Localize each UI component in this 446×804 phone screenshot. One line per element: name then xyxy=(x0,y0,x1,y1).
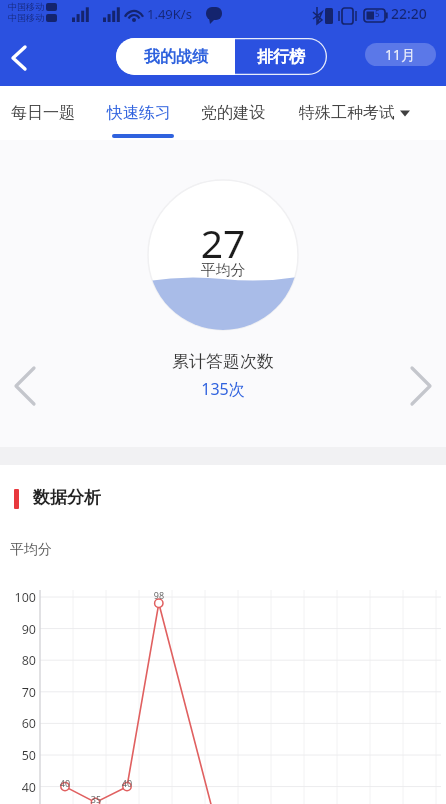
button[interactable]: 快速练习 xyxy=(107,103,171,123)
staticText: 5 xyxy=(375,8,380,19)
staticText: 40 xyxy=(119,777,135,789)
staticText: 35 xyxy=(88,793,104,804)
staticText: 我的战绩 xyxy=(144,47,208,67)
staticText: 100 xyxy=(0,589,36,606)
staticText: 数据分析 xyxy=(33,487,101,508)
staticText: 中国移动 xyxy=(8,12,44,23)
staticText: 70 xyxy=(0,684,36,701)
button[interactable]: 排行榜 xyxy=(235,38,327,75)
staticText: 80 xyxy=(0,652,36,669)
staticText: 90 xyxy=(0,621,36,638)
staticText: 1.49K/s xyxy=(147,5,192,23)
staticText: 50 xyxy=(0,747,36,764)
button[interactable] xyxy=(8,362,42,410)
button[interactable]: 特殊工种考试 xyxy=(299,103,410,123)
staticText: 40 xyxy=(0,779,36,796)
button[interactable]: 11月 xyxy=(365,43,436,66)
staticText: 累计答题次数 xyxy=(0,351,446,372)
staticText: 22:20 xyxy=(391,4,427,23)
staticText: 40 xyxy=(57,777,73,789)
button[interactable]: 我的战绩 xyxy=(116,38,235,75)
staticText: 60 xyxy=(0,715,36,732)
staticText: 平均分 xyxy=(10,541,52,559)
button[interactable] xyxy=(4,42,36,74)
button[interactable]: 135次 xyxy=(0,378,446,400)
button[interactable]: 每日一题 xyxy=(11,103,75,123)
staticText: 排行榜 xyxy=(257,47,305,67)
staticText: 中国移动 xyxy=(8,1,44,12)
staticText: 27 xyxy=(0,216,446,269)
staticText: 11月 xyxy=(385,45,416,64)
staticText: 98 xyxy=(151,589,167,601)
button[interactable] xyxy=(404,362,438,410)
staticText: 特殊工种考试 xyxy=(299,103,395,123)
button[interactable]: 党的建设 xyxy=(201,103,265,123)
staticText: 平均分 xyxy=(0,261,446,280)
